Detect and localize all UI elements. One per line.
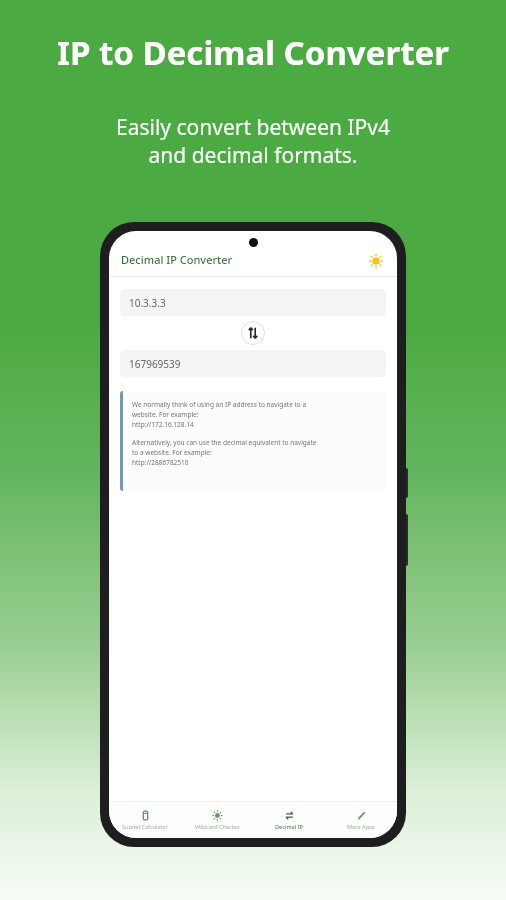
- staticText: More Apps: [347, 823, 375, 830]
- staticText: Easily convert between IPv4 and decimal …: [116, 113, 390, 169]
- button[interactable]: Wildcard Checker: [181, 802, 253, 838]
- staticText: We normally think of using an IP address…: [132, 400, 307, 429]
- button[interactable]: Swap: [241, 321, 265, 345]
- button[interactable]: Decimal IP: [253, 802, 325, 838]
- staticText: Decimal IP: [275, 823, 303, 830]
- button[interactable]: Toggle theme: [367, 252, 385, 270]
- staticText: IP to Decimal Converter: [57, 30, 449, 75]
- staticText: Alternatively, you can use the decimal e…: [132, 438, 317, 467]
- staticText: Subnet Calculator: [122, 823, 168, 830]
- staticText: 167969539: [129, 357, 181, 371]
- button[interactable]: We normally think of using an IP address…: [120, 391, 386, 491]
- button[interactable]: 10.3.3.3: [120, 289, 386, 316]
- button[interactable]: 167969539: [120, 350, 386, 377]
- staticText: Wildcard Checker: [195, 823, 240, 830]
- button[interactable]: Subnet Calculator: [109, 802, 181, 838]
- staticText: 10.3.3.3: [129, 296, 166, 310]
- button[interactable]: More Apps: [325, 802, 397, 838]
- staticText: Decimal IP Converter: [121, 252, 233, 267]
